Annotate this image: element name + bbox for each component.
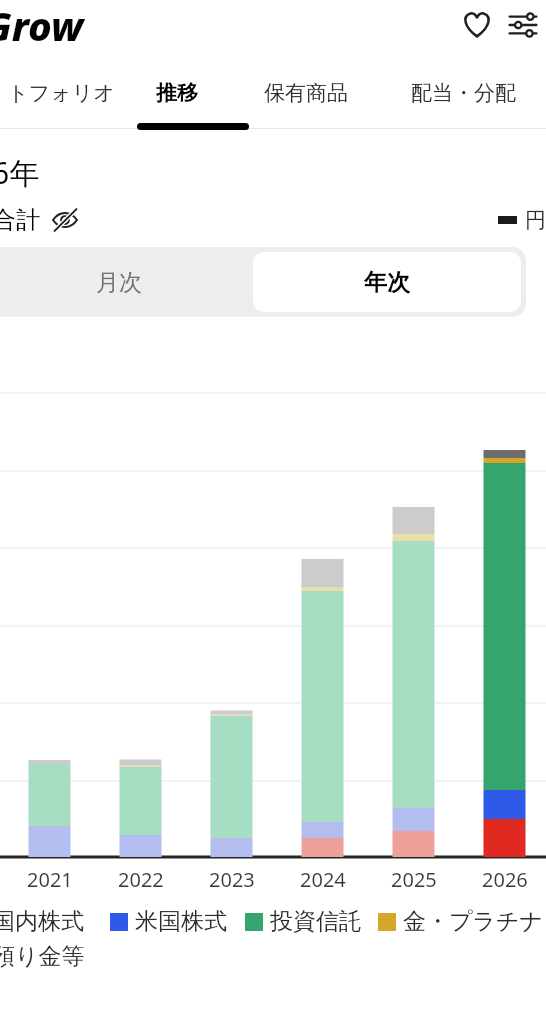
staticText: 金・プラチナ <box>403 907 544 936</box>
button[interactable]: 合計 <box>0 205 84 235</box>
staticText: 米国株式 <box>135 907 227 936</box>
staticText: 6年 <box>0 152 40 193</box>
staticText: 推移 <box>156 80 198 106</box>
button[interactable]: 配当・分配 <box>380 58 546 128</box>
staticText: トフォリオ <box>7 80 115 106</box>
button[interactable]: Favorites <box>454 2 500 48</box>
staticText: 2021 <box>27 866 73 893</box>
staticText: 2026 <box>482 866 528 893</box>
button[interactable]: Settings <box>500 2 546 48</box>
staticText: 配当・分配 <box>411 80 516 106</box>
staticText: 合計 <box>0 205 40 235</box>
staticText: 年次 <box>364 268 410 297</box>
staticText: 国内株式 <box>0 907 84 936</box>
staticText: 円 <box>525 207 546 233</box>
button[interactable]: 月次 <box>0 252 253 312</box>
staticText: 保有商品 <box>264 80 348 106</box>
staticText: 2025 <box>391 866 437 893</box>
staticText: 投資信託 <box>270 907 362 936</box>
staticText: 2024 <box>300 866 346 893</box>
staticText: 月次 <box>96 268 142 297</box>
button[interactable]: 保有商品 <box>232 58 380 128</box>
staticText: 2023 <box>209 866 255 893</box>
staticText: 預り金等 <box>0 942 85 971</box>
button[interactable]: トフォリオ <box>0 58 122 128</box>
button[interactable]: 年次 <box>253 252 521 312</box>
staticText: 2022 <box>118 866 164 893</box>
button[interactable]: 推移 <box>122 58 232 128</box>
staticText: Grow <box>0 0 84 52</box>
